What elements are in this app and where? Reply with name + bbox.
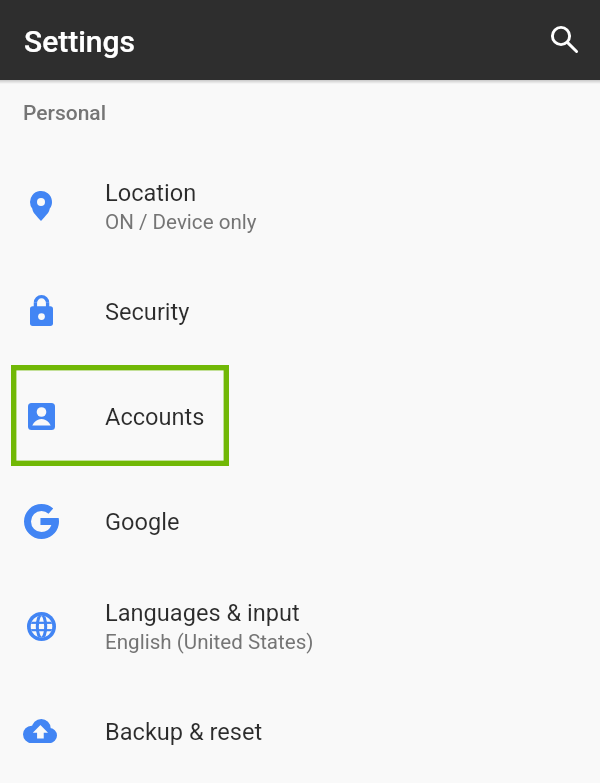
- staticText: Google: [105, 508, 180, 536]
- staticText: Languages & input: [105, 599, 300, 627]
- button[interactable]: Languages & input: [0, 574, 600, 679]
- staticText: ON / Device only: [105, 210, 257, 234]
- staticText: Location: [105, 179, 197, 207]
- staticText: Accounts: [105, 403, 205, 431]
- staticText: English (United States): [105, 630, 314, 654]
- staticText: Security: [105, 298, 190, 326]
- button[interactable]: Backup & reset: [0, 679, 600, 783]
- button[interactable]: Location: [0, 154, 600, 259]
- button[interactable]: Security: [0, 259, 600, 364]
- staticText: Settings: [24, 24, 136, 59]
- staticText: Personal: [23, 101, 107, 126]
- button[interactable]: Search: [541, 16, 581, 56]
- button[interactable]: Google: [0, 469, 600, 574]
- button[interactable]: Accounts: [0, 364, 600, 469]
- staticText: Backup & reset: [105, 718, 263, 746]
